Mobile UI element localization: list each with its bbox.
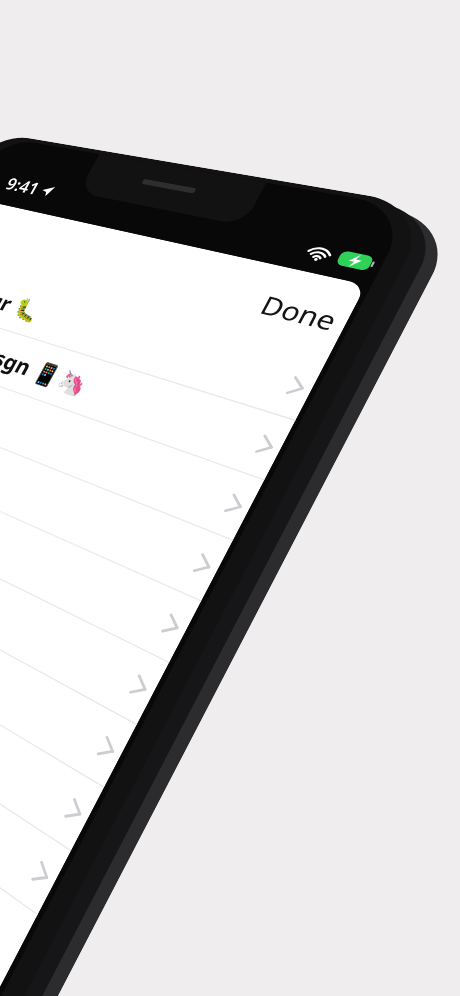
button[interactable]: Settings xyxy=(0,585,104,850)
other: Wi-Fi xyxy=(304,245,334,263)
staticText: 9:41 xyxy=(2,172,44,200)
other: Battery charging xyxy=(335,250,378,272)
button[interactable]: A new dsgn 📱🦄 xyxy=(0,305,295,479)
button[interactable]: Movies xyxy=(0,397,233,600)
staticText: Done xyxy=(255,287,345,338)
button[interactable]: Featur 🐛 xyxy=(0,260,326,420)
button[interactable]: TV Shows xyxy=(0,351,264,540)
button[interactable]: Library xyxy=(0,538,137,787)
button[interactable]: Podcasts xyxy=(0,491,169,724)
button[interactable]: About xyxy=(0,634,71,914)
staticText: A new dsgn 📱🦄 xyxy=(0,321,94,400)
button[interactable]: Done xyxy=(242,279,358,347)
staticText: Featur 🐛 xyxy=(0,275,47,326)
button[interactable]: Music xyxy=(0,444,201,662)
